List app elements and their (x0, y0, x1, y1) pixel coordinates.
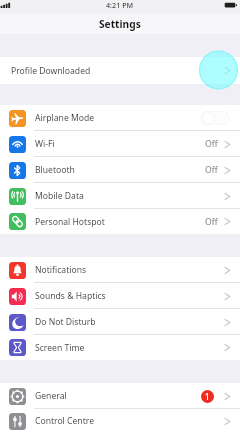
button[interactable]: Control Centre (0, 409, 240, 433)
staticText: Personal Hotspot (35, 216, 105, 228)
button[interactable]: Sounds & Haptics (0, 283, 240, 309)
staticText: Profile Downloaded (11, 65, 91, 77)
button[interactable]: Mobile Data (0, 183, 240, 209)
staticText: Off (205, 216, 218, 228)
staticText: 4:21 PM (106, 0, 134, 10)
button[interactable]: Notifications (0, 257, 240, 283)
staticText: 1 (205, 391, 210, 402)
staticText: Settings (99, 17, 141, 31)
staticText: Airplane Mode (35, 112, 95, 124)
button[interactable]: Profile Downloaded (0, 57, 240, 84)
button[interactable]: Do Not Disturb (0, 309, 240, 335)
staticText: Wi-Fi (35, 138, 55, 150)
button[interactable]: Screen Time (0, 335, 240, 360)
staticText: Bluetooth (35, 164, 75, 176)
staticText: Do Not Disturb (35, 316, 96, 328)
button[interactable]: Bluetooth (0, 157, 240, 183)
button[interactable]: Wi-Fi (0, 131, 240, 157)
button[interactable]: Airplane Mode (0, 105, 240, 131)
button[interactable]: General (0, 383, 240, 409)
staticText: Screen Time (35, 342, 85, 354)
staticText: Mobile Data (35, 190, 84, 202)
staticText: Sounds & Haptics (35, 290, 106, 302)
staticText: Off (205, 138, 218, 150)
staticText: Notifications (35, 264, 87, 276)
button[interactable]: Personal Hotspot (0, 209, 240, 234)
staticText: Off (205, 164, 218, 176)
staticText: General (35, 390, 67, 402)
staticText: Control Centre (35, 415, 94, 427)
